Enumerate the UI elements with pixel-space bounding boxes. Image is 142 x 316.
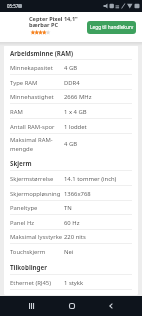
button[interactable]: Maksimal RAM-mengde xyxy=(4,133,138,155)
staticText: Skjermstørrelse xyxy=(10,175,70,183)
staticText: Cepter Pixel 14,1" bærbar PC xyxy=(29,15,87,29)
button[interactable]: Touchskjerm xyxy=(4,244,138,259)
staticText: Ethernet (RJ45) xyxy=(10,279,70,287)
button[interactable]: RAM xyxy=(4,104,138,119)
button[interactable]: Skjermoppløsning xyxy=(4,186,138,201)
staticText: Panel Hz xyxy=(10,219,70,227)
staticText: 220 nits xyxy=(64,233,86,241)
staticText: Arbeidsminne (RAM) xyxy=(10,49,74,57)
staticText: 14.1 tommer (inch) xyxy=(64,175,117,183)
button[interactable]: Maksimal lysstyrke xyxy=(4,229,138,244)
staticText: Skjermoppløsning xyxy=(10,190,70,198)
staticText: Paneltype xyxy=(10,204,70,212)
button[interactable]: Minnekapasitet xyxy=(4,60,138,75)
button[interactable]: Panel Hz xyxy=(4,215,138,230)
staticText: 1366x768 xyxy=(64,190,91,198)
button[interactable]: Legg til handlekurv xyxy=(87,21,136,34)
staticText: Touchskjerm xyxy=(10,248,70,256)
staticText: DDR4 xyxy=(64,79,80,87)
button[interactable]: Type RAM xyxy=(4,75,138,90)
button[interactable]: Skjerm xyxy=(4,155,138,171)
button[interactable]: Antall RAM-spor xyxy=(4,119,138,134)
button[interactable]: Minnehastighet xyxy=(4,89,138,104)
staticText: Tilkoblinger xyxy=(10,263,47,271)
staticText: 2666 MHz xyxy=(64,93,92,101)
staticText: Type RAM xyxy=(10,79,70,87)
staticText: Legg til handlekurv xyxy=(90,24,134,31)
staticText: 1 stykk xyxy=(64,279,84,287)
staticText: RAM xyxy=(10,108,70,116)
staticText: 60 Hz xyxy=(64,219,80,227)
staticText: Minnehastighet xyxy=(10,93,70,101)
staticText: 4 GB xyxy=(64,140,78,148)
button[interactable]: Recent apps xyxy=(21,296,41,316)
button[interactable]: Skjermstørrelse xyxy=(4,171,138,186)
button[interactable]: Paneltype xyxy=(4,200,138,215)
staticText: Skjerm xyxy=(10,159,32,167)
staticText: 1 loddet xyxy=(64,123,87,131)
staticText: Maksimal lysstyrke xyxy=(10,233,70,241)
button[interactable]: Back xyxy=(101,296,121,316)
staticText: 1 x 4 GB xyxy=(64,108,87,116)
staticText: Minnekapasitet xyxy=(10,64,70,72)
button[interactable]: Tilkoblinger xyxy=(4,259,138,275)
staticText: 05:57 xyxy=(7,3,19,9)
staticText: Maksimal RAM-mengde xyxy=(10,136,70,153)
staticText: 4 GB xyxy=(64,64,78,72)
button[interactable]: Home xyxy=(62,296,82,316)
staticText: TN xyxy=(64,204,72,212)
staticText: Antall RAM-spor xyxy=(10,123,70,131)
button[interactable]: Ethernet (RJ45) xyxy=(4,275,138,290)
button[interactable]: Arbeidsminne (RAM) xyxy=(4,45,138,60)
staticText: Nei xyxy=(64,248,74,256)
